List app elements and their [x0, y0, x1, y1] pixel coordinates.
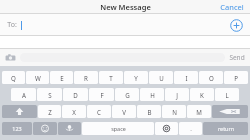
staticText: S	[48, 91, 52, 99]
staticText: G	[125, 91, 130, 99]
button[interactable]: Cancel	[214, 0, 250, 14]
staticText: Send	[229, 53, 245, 62]
button[interactable]: L	[215, 88, 239, 101]
button[interactable]: Dictation	[58, 122, 81, 135]
button[interactable]: U	[149, 71, 173, 84]
button[interactable]: Z	[38, 105, 61, 118]
button[interactable]: M	[187, 105, 211, 118]
button[interactable]: A	[11, 88, 36, 101]
staticText: C	[97, 108, 101, 116]
staticText: .	[190, 125, 192, 133]
button[interactable]: K	[190, 88, 214, 101]
button[interactable]: G	[115, 88, 139, 101]
staticText: space	[111, 125, 126, 132]
button[interactable]: P	[224, 71, 248, 84]
button[interactable]: X	[62, 105, 86, 118]
button[interactable]: T	[99, 71, 123, 84]
staticText: W	[35, 74, 41, 82]
staticText: R	[84, 74, 88, 82]
button[interactable]: Camera	[5, 52, 16, 63]
button[interactable]: I	[174, 71, 198, 84]
staticText: To:	[7, 20, 17, 30]
button[interactable]: Send	[229, 53, 245, 62]
button[interactable]: B	[137, 105, 161, 118]
button[interactable]: To:	[0, 14, 250, 36]
button[interactable]: 123	[2, 122, 32, 135]
staticText: return	[218, 125, 234, 132]
staticText: Q	[11, 74, 16, 82]
staticText: Z	[48, 108, 52, 116]
button[interactable]: Add contact	[230, 19, 243, 32]
button[interactable]: V	[112, 105, 136, 118]
button[interactable]: F	[89, 88, 114, 101]
staticText: M	[196, 108, 202, 116]
staticText: A	[22, 91, 26, 99]
button[interactable]: space	[82, 122, 154, 135]
button[interactable]: Shift	[2, 105, 37, 118]
button[interactable]: Emoji	[33, 122, 57, 135]
button[interactable]: E	[50, 71, 73, 84]
button[interactable]: H	[140, 88, 164, 101]
staticText: New Message	[100, 2, 151, 12]
staticText: F	[100, 91, 104, 99]
staticText: I	[185, 74, 188, 82]
staticText: Cancel	[220, 2, 244, 12]
button[interactable]: R	[74, 71, 98, 84]
staticText: O	[209, 74, 214, 82]
button[interactable]: Q	[2, 71, 25, 84]
staticText: Y	[134, 74, 138, 82]
staticText: T	[109, 74, 113, 82]
staticText: U	[159, 74, 164, 82]
button[interactable]: D	[63, 88, 88, 101]
staticText: K	[200, 91, 204, 99]
staticText: L	[225, 91, 229, 99]
button[interactable]: Backspace	[212, 105, 248, 118]
button[interactable]: J	[165, 88, 189, 101]
button[interactable]: .	[179, 122, 202, 135]
staticText: D	[73, 91, 78, 99]
staticText: X	[72, 108, 76, 116]
button[interactable]: C	[87, 105, 111, 118]
staticText: J	[176, 91, 178, 99]
button[interactable]: S	[37, 88, 62, 101]
staticText: P	[234, 74, 238, 82]
button[interactable]: return	[203, 122, 248, 135]
staticText: B	[147, 108, 152, 116]
staticText: N	[172, 108, 177, 116]
staticText: H	[150, 91, 155, 99]
staticText: V	[122, 108, 126, 116]
button[interactable]: N	[162, 105, 186, 118]
staticText: E	[60, 74, 64, 82]
button[interactable]: Y	[124, 71, 148, 84]
button[interactable]: At sign	[155, 122, 178, 135]
button[interactable]: W	[26, 71, 49, 84]
button[interactable]: O	[199, 71, 223, 84]
staticText: 123	[12, 125, 22, 132]
